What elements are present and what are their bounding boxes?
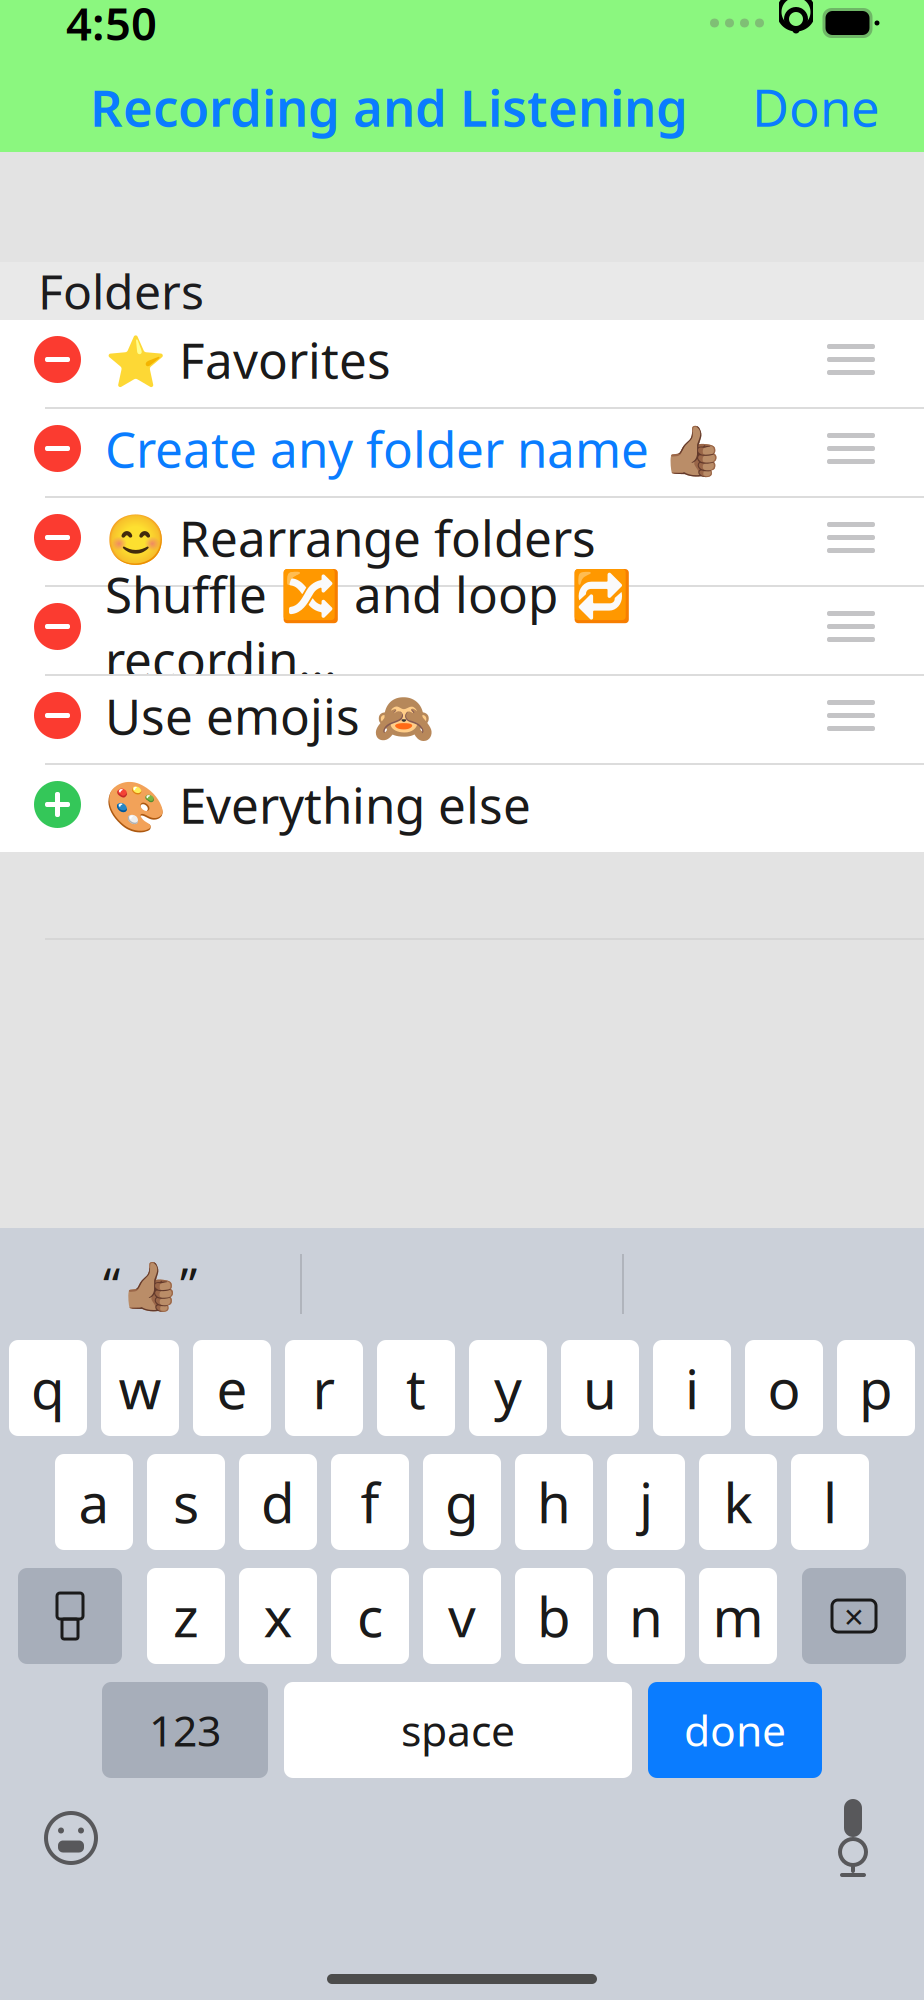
staticText: w	[118, 1352, 161, 1424]
staticText: 4:50	[66, 0, 157, 53]
button[interactable]: z	[147, 1568, 225, 1664]
staticText: p	[859, 1352, 893, 1424]
staticText: e	[216, 1352, 247, 1424]
button[interactable]: g	[423, 1454, 501, 1550]
button[interactable]: ⭐️ Favorites	[0, 320, 924, 407]
button[interactable]: e	[193, 1340, 271, 1436]
staticText: i	[685, 1352, 699, 1424]
staticText: s	[173, 1466, 199, 1538]
staticText: q	[31, 1352, 65, 1424]
button[interactable]: space	[284, 1682, 632, 1778]
button[interactable]: n	[607, 1568, 685, 1664]
button[interactable]: l	[791, 1454, 869, 1550]
staticText: “👍🏽”	[103, 1252, 197, 1316]
button[interactable]: x	[239, 1568, 317, 1664]
button[interactable]: Delete	[802, 1568, 906, 1664]
staticText: x	[263, 1580, 292, 1652]
staticText: r	[312, 1352, 335, 1424]
button[interactable]: Shuffle 🔀 and loop 🔁 recordin…	[0, 587, 924, 674]
staticText: y	[494, 1352, 522, 1424]
staticText: space	[401, 1702, 515, 1758]
button[interactable]: Done	[738, 63, 894, 151]
staticText: t	[406, 1352, 426, 1424]
staticText: 😊 Rearrange folders	[105, 505, 596, 570]
button[interactable]: c	[331, 1568, 409, 1664]
staticText: d	[261, 1466, 295, 1538]
button[interactable]: p	[837, 1340, 915, 1436]
staticText: Create any folder name 👍🏽	[105, 416, 723, 481]
button[interactable]: a	[55, 1454, 133, 1550]
button[interactable]: m	[699, 1568, 777, 1664]
button[interactable]: u	[561, 1340, 639, 1436]
button[interactable]: j	[607, 1454, 685, 1550]
staticText: f	[360, 1466, 379, 1538]
button[interactable]: Emoji keyboard	[36, 1803, 106, 1873]
button[interactable]: w	[101, 1340, 179, 1436]
button[interactable]: d	[239, 1454, 317, 1550]
staticText: h	[537, 1466, 571, 1538]
button[interactable]: Create any folder name 👍🏽	[0, 409, 924, 496]
staticText: g	[445, 1466, 479, 1538]
staticText: b	[537, 1580, 571, 1652]
button[interactable]: 😊 Rearrange folders	[0, 498, 924, 585]
button[interactable]: f	[331, 1454, 409, 1550]
button[interactable]: r	[285, 1340, 363, 1436]
staticText: done	[684, 1702, 786, 1758]
staticText: n	[629, 1580, 663, 1652]
staticText: c	[357, 1580, 383, 1652]
staticText: ×	[844, 1593, 864, 1639]
staticText: ⭐️ Favorites	[105, 327, 391, 392]
staticText: u	[583, 1352, 617, 1424]
button[interactable]: i	[653, 1340, 731, 1436]
button[interactable]: k	[699, 1454, 777, 1550]
staticText: Done	[752, 73, 880, 141]
staticText: l	[823, 1466, 837, 1538]
button[interactable]: v	[423, 1568, 501, 1664]
button[interactable]: t	[377, 1340, 455, 1436]
button[interactable]: q	[9, 1340, 87, 1436]
button[interactable]: o	[745, 1340, 823, 1436]
staticText: m	[712, 1580, 763, 1652]
staticText: o	[767, 1352, 800, 1424]
button[interactable]: y	[469, 1340, 547, 1436]
staticText: a	[78, 1466, 109, 1538]
staticText: 🎨 Everything else	[105, 772, 531, 837]
button[interactable]: Dictation	[818, 1798, 888, 1878]
button[interactable]: 123	[102, 1682, 268, 1778]
button[interactable]: Shift	[18, 1568, 122, 1664]
staticText: Shuffle 🔀 and loop 🔁 recordin…	[105, 561, 632, 692]
staticText: v	[448, 1580, 476, 1652]
staticText: j	[639, 1466, 653, 1538]
button[interactable]: 🎨 Everything else	[0, 765, 924, 852]
button[interactable]: “👍🏽”	[0, 1228, 300, 1340]
button[interactable]: Use emojis 🙈	[0, 676, 924, 763]
staticText: Folders	[38, 259, 204, 323]
button[interactable]: b	[515, 1568, 593, 1664]
staticText: k	[723, 1466, 752, 1538]
button[interactable]: h	[515, 1454, 593, 1550]
button[interactable]: s	[147, 1454, 225, 1550]
staticText: z	[173, 1580, 199, 1652]
button[interactable]: done	[648, 1682, 822, 1778]
staticText: Recording and Listening	[90, 73, 688, 141]
staticText: Use emojis 🙈	[105, 683, 434, 748]
staticText: 123	[149, 1702, 221, 1758]
